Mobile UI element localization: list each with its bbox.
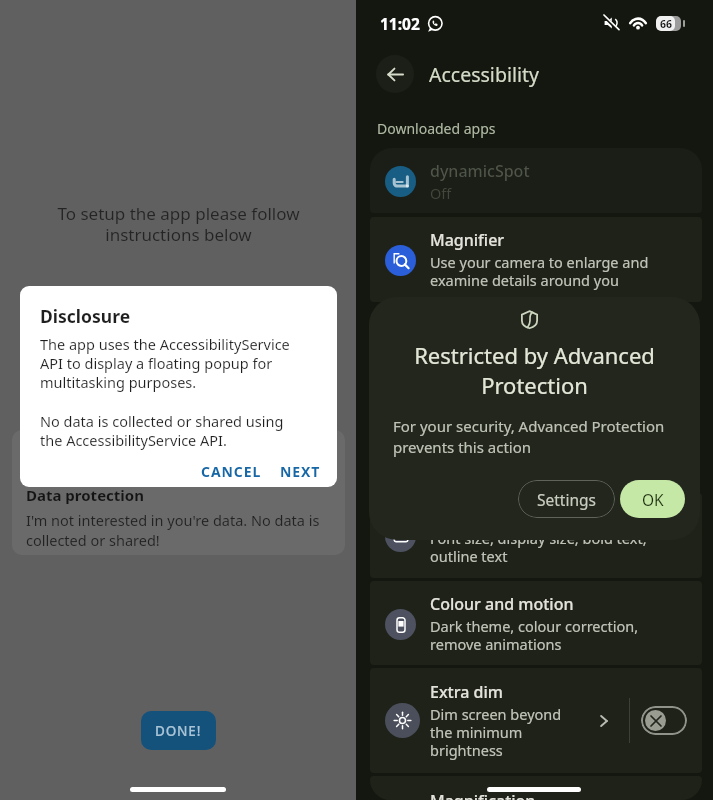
button[interactable]: Magnifier <box>370 217 702 302</box>
staticText: Use your camera to enlarge and examine d… <box>430 252 649 290</box>
staticText: Restricted by Advanced Protection <box>369 340 700 401</box>
staticText: Magnifier <box>430 229 505 251</box>
button[interactable]: dynamicSpot <box>370 148 702 213</box>
staticText: NEXT <box>280 462 321 481</box>
staticText: CANCEL <box>201 462 262 481</box>
button[interactable]: Colour and motion <box>370 581 702 665</box>
staticText: 66 <box>660 17 673 31</box>
staticText: Settings <box>537 489 596 510</box>
button[interactable]: NEXT <box>274 458 327 485</box>
staticText: Colour and motion <box>430 593 574 615</box>
button[interactable]: OK <box>620 480 685 518</box>
staticText: Off <box>430 183 452 203</box>
staticText: OK <box>642 489 664 510</box>
staticText: To setup the app please follow instructi… <box>57 202 300 246</box>
staticText: Magnification <box>430 790 536 800</box>
button[interactable]: Toggle extra dim <box>641 706 687 735</box>
staticText: Font size, display size, bold text, outl… <box>430 528 647 566</box>
staticText: dynamicSpot <box>430 160 530 182</box>
button[interactable]: CANCEL <box>195 458 268 485</box>
staticText: Extra dim <box>430 681 503 703</box>
staticText: Display size and text <box>430 505 586 527</box>
button[interactable]: Magnification <box>370 776 702 800</box>
staticText: Disclosure <box>40 304 131 328</box>
button[interactable]: Settings <box>518 480 615 518</box>
button[interactable]: Display size and text <box>370 493 702 578</box>
staticText: Downloaded apps <box>377 119 496 138</box>
staticText: For your security, Advanced Protection p… <box>393 416 665 458</box>
staticText: The app uses the AccessibilityService AP… <box>40 334 290 393</box>
staticText: I'm not interested in you're data. No da… <box>26 510 320 550</box>
button[interactable]: Extra dim <box>370 668 702 773</box>
button[interactable]: DONE! <box>141 711 216 750</box>
staticText: 11:02 <box>380 13 420 34</box>
staticText: Dim screen beyond the minimum brightness <box>430 704 562 760</box>
button[interactable]: Open extra dim settings <box>592 709 616 733</box>
staticText: DONE! <box>155 722 202 740</box>
staticText: Data protection <box>26 485 144 505</box>
staticText: No data is collected or shared using the… <box>40 411 284 451</box>
staticText: Accessibility <box>429 61 539 88</box>
button[interactable]: Back <box>376 55 414 93</box>
staticText: Dark theme, colour correction, remove an… <box>430 616 639 654</box>
